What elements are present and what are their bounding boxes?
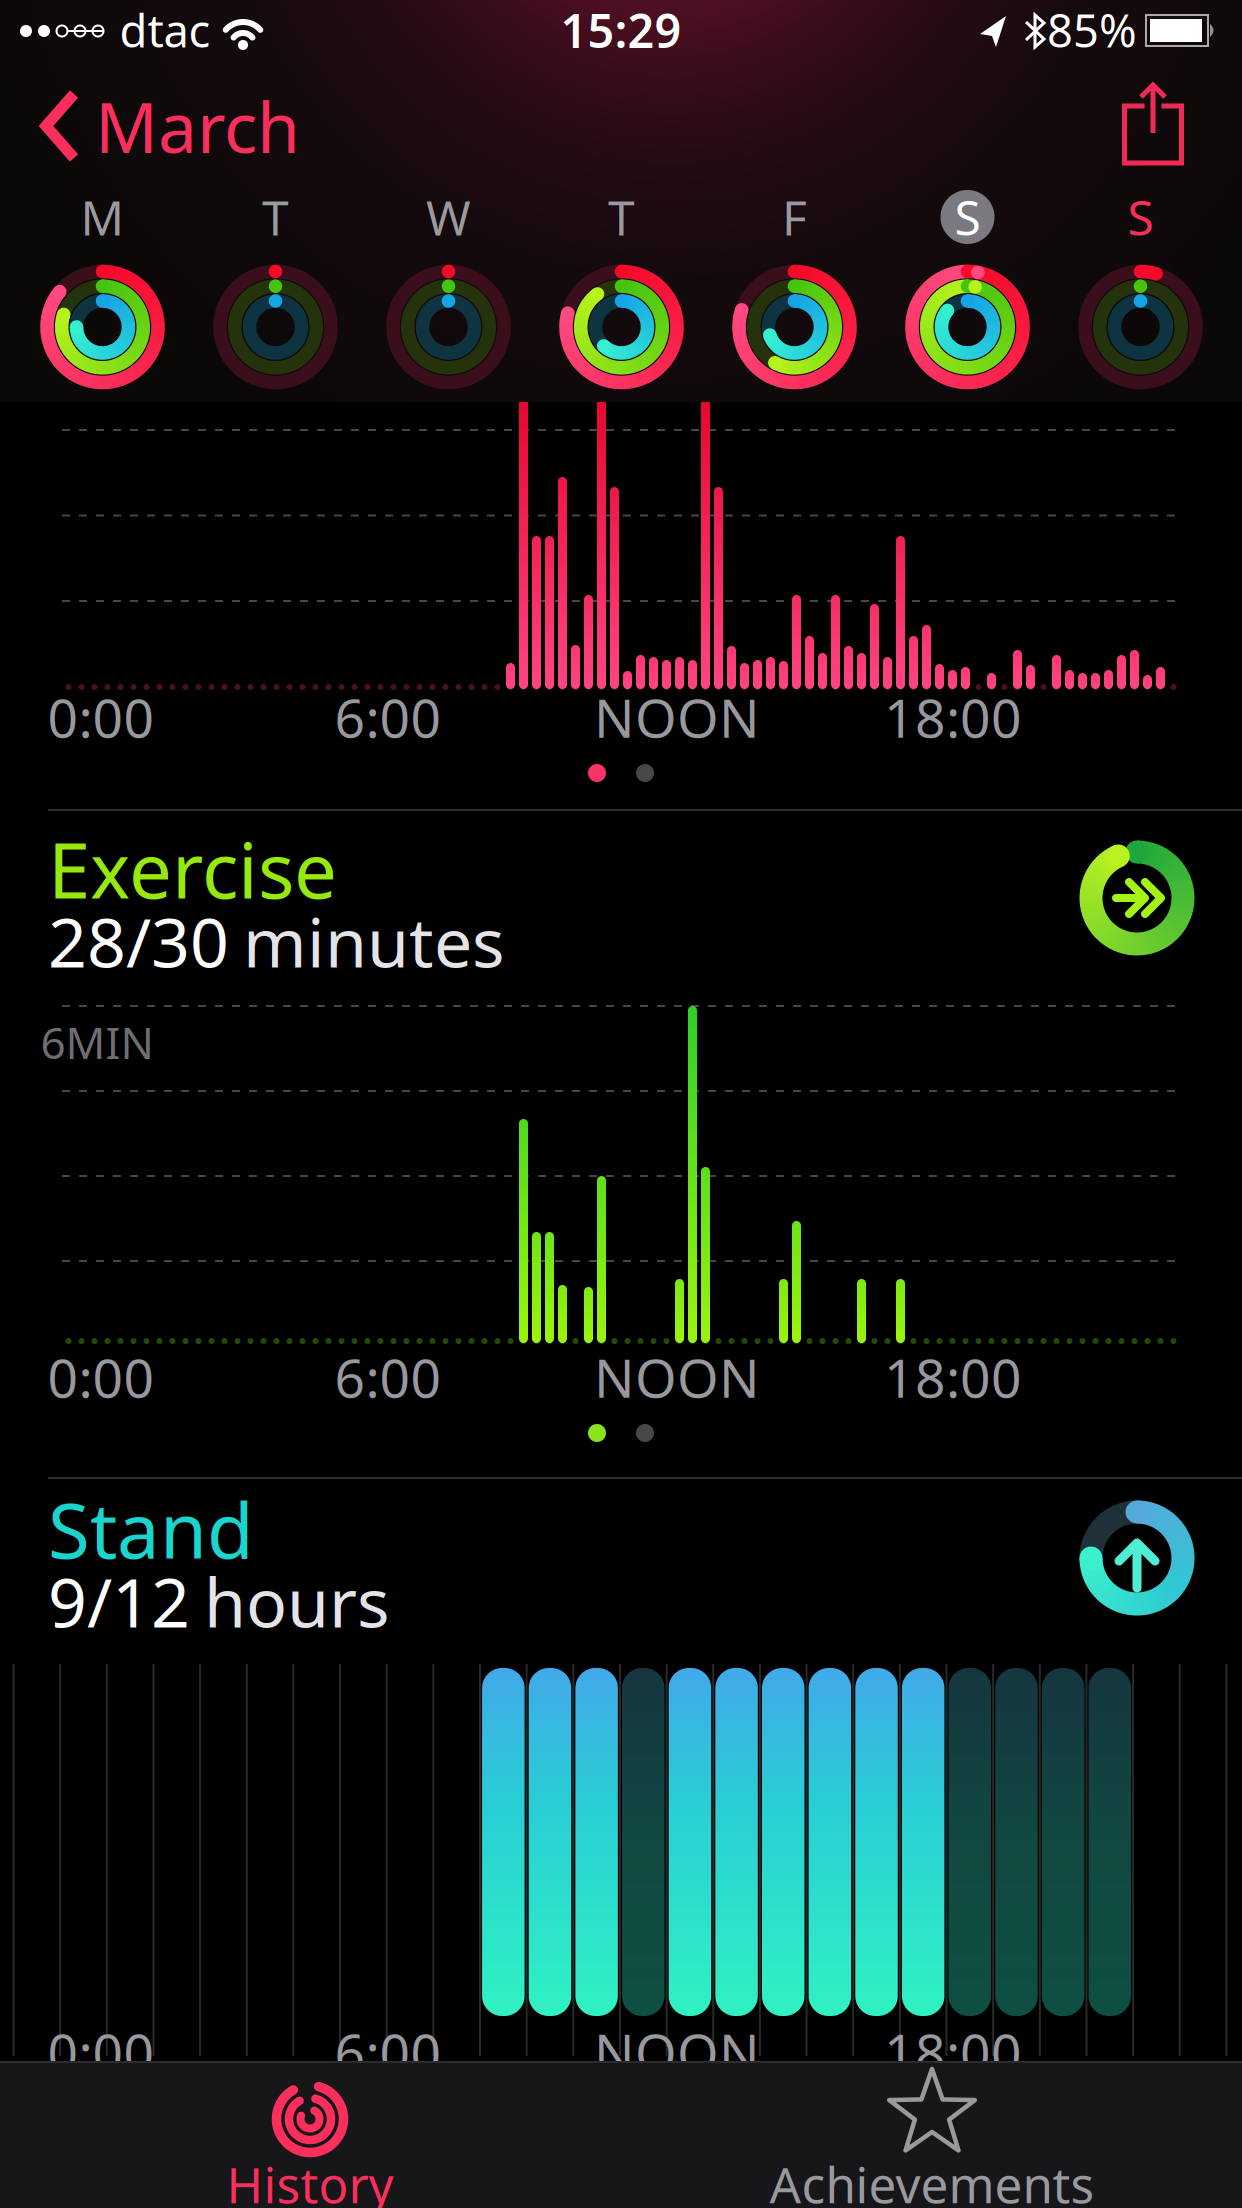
- button[interactable]: History: [155, 2062, 465, 2208]
- staticText: 0:00: [47, 682, 154, 752]
- button[interactable]: Achievements: [777, 2062, 1087, 2208]
- button[interactable]: Day S: [881, 185, 1054, 435]
- staticText: minutes: [243, 896, 505, 986]
- button[interactable]: Day T: [535, 185, 708, 435]
- staticText: 6:00: [334, 682, 441, 752]
- staticText: NOON: [594, 682, 760, 752]
- staticText: March: [95, 80, 300, 172]
- staticText: W: [426, 185, 471, 249]
- staticText: 6:00: [334, 1342, 441, 1412]
- staticText: History: [226, 2151, 393, 2208]
- staticText: dtac: [119, 0, 210, 60]
- staticText: Exercise: [48, 818, 337, 919]
- staticText: T: [262, 185, 289, 249]
- button[interactable]: Back: [30, 88, 410, 164]
- staticText: hours: [204, 1556, 390, 1646]
- button[interactable]: Day S: [1054, 185, 1227, 435]
- staticText: S: [1127, 185, 1153, 249]
- staticText: S: [954, 185, 980, 249]
- staticText: F: [782, 185, 807, 249]
- staticText: Stand: [48, 1478, 254, 1579]
- staticText: 6MIN: [40, 1013, 153, 1071]
- button[interactable]: Day W: [362, 185, 535, 435]
- button[interactable]: Day T: [189, 185, 362, 435]
- staticText: 0:00: [47, 1342, 154, 1412]
- staticText: 18:00: [884, 2017, 1022, 2087]
- staticText: 0:00: [47, 2017, 154, 2087]
- staticText: 28/30: [48, 896, 229, 986]
- staticText: 6:00: [334, 2017, 441, 2087]
- staticText: M: [80, 185, 124, 249]
- staticText: 18:00: [884, 1342, 1022, 1412]
- staticText: 9/12: [48, 1556, 190, 1646]
- staticText: NOON: [594, 1342, 760, 1412]
- staticText: 85%: [1047, 0, 1137, 60]
- staticText: NOON: [594, 2017, 760, 2087]
- staticText: 18:00: [884, 682, 1022, 752]
- staticText: Achievements: [769, 2151, 1094, 2208]
- button[interactable]: Day F: [708, 185, 881, 435]
- button[interactable]: Day M: [16, 185, 189, 435]
- staticText: T: [608, 185, 635, 249]
- staticText: 15:29: [560, 0, 681, 61]
- button[interactable]: Share: [1096, 75, 1209, 175]
